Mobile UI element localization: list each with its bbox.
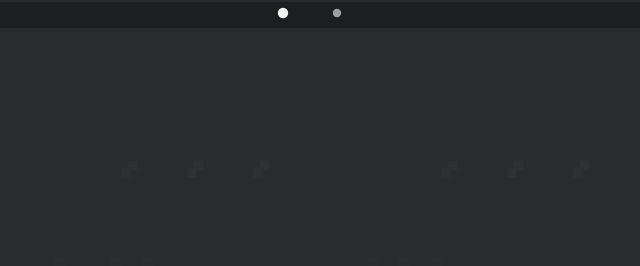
button[interactable]: Page 2 bbox=[327, 3, 347, 23]
button[interactable]: Page 1, selected bbox=[273, 3, 293, 23]
